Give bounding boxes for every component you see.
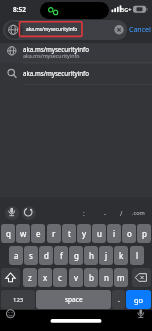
staticText: : [83, 209, 85, 218]
staticText: z [28, 272, 32, 283]
staticText: go [134, 295, 144, 305]
staticText: 5G+ [121, 6, 132, 13]
staticText: d [44, 250, 49, 261]
button[interactable]: c [53, 268, 67, 287]
staticText: c [58, 272, 62, 283]
button[interactable]: p [137, 224, 151, 243]
button[interactable] [3, 20, 127, 40]
button[interactable]: l [130, 246, 144, 265]
staticText: t [68, 228, 71, 239]
button[interactable]: h [84, 246, 98, 265]
staticText: Cancel [129, 25, 151, 35]
button[interactable]: k [114, 246, 128, 265]
button[interactable]: aka.ms/mysecurityinfo [23, 69, 93, 77]
button[interactable]: s [24, 246, 38, 265]
staticText: space [65, 295, 83, 304]
button[interactable]: .com [128, 208, 148, 218]
button[interactable]: a [9, 246, 23, 265]
staticText: g [74, 250, 79, 261]
button[interactable]: d [39, 246, 53, 265]
button[interactable]: g [69, 246, 83, 265]
staticText: s [29, 250, 33, 261]
staticText: f [60, 250, 63, 261]
button[interactable]: u [92, 224, 106, 243]
staticText: y [82, 228, 87, 239]
staticText: 123 [13, 296, 24, 304]
staticText: v [74, 272, 79, 283]
button[interactable] [5, 206, 19, 220]
staticText: q [6, 228, 11, 239]
button[interactable]: 123 [1, 290, 35, 309]
button[interactable]: f [54, 246, 68, 265]
button[interactable]: e [31, 224, 45, 243]
staticText: e [36, 228, 41, 239]
button[interactable]: n [99, 268, 113, 287]
staticText: u [97, 228, 102, 239]
button[interactable]: : [80, 208, 88, 218]
staticText: aka.ms/mysecurityinfo [26, 26, 78, 33]
staticText: w [20, 228, 27, 239]
staticText: o [127, 228, 132, 239]
button[interactable] [0, 43, 152, 63]
button[interactable]: j [99, 246, 113, 265]
staticText: a [14, 250, 19, 261]
staticText: j [105, 250, 108, 261]
staticText: m [117, 272, 125, 283]
button[interactable]: b [84, 268, 98, 287]
button[interactable]: aka.ms/mysecurityinfo [23, 45, 93, 53]
button[interactable]: r [47, 224, 61, 243]
button[interactable] [22, 206, 36, 220]
button[interactable]: o [122, 224, 136, 243]
staticText: b [89, 272, 94, 283]
button[interactable]: v [69, 268, 83, 287]
staticText: - [104, 209, 107, 218]
staticText: . [118, 295, 120, 305]
staticText: x [43, 272, 48, 283]
button[interactable]: / [117, 208, 125, 218]
button[interactable]: w [16, 224, 30, 243]
button[interactable]: - [101, 208, 109, 218]
staticText: aka.ms/mysecurityinfo [23, 45, 89, 53]
staticText: k [119, 250, 124, 261]
button[interactable]: z [23, 268, 37, 287]
staticText: n [104, 272, 109, 283]
staticText: aka.ms/mysecurityinfo [23, 52, 80, 59]
staticText: i [113, 228, 116, 239]
button[interactable]: m [114, 268, 128, 287]
button[interactable]: Cancel [128, 24, 152, 36]
button[interactable] [132, 268, 151, 287]
button[interactable]: q [1, 224, 15, 243]
staticText: p [142, 228, 147, 239]
button[interactable]: space [36, 290, 111, 309]
button[interactable]: go [126, 290, 151, 309]
button[interactable]: x [38, 268, 52, 287]
staticText: r [52, 228, 56, 239]
button[interactable]: y [77, 224, 91, 243]
staticText: aka.ms/mysecurityinfo [23, 69, 89, 77]
button[interactable] [1, 268, 20, 287]
staticText: l [136, 250, 139, 261]
button[interactable]: t [62, 224, 76, 243]
staticText: .com [132, 209, 145, 217]
staticText: / [120, 209, 123, 218]
button[interactable]: i [107, 224, 121, 243]
button[interactable]: . [112, 290, 125, 309]
staticText: 8:52 [13, 5, 26, 14]
staticText: h [89, 250, 94, 261]
